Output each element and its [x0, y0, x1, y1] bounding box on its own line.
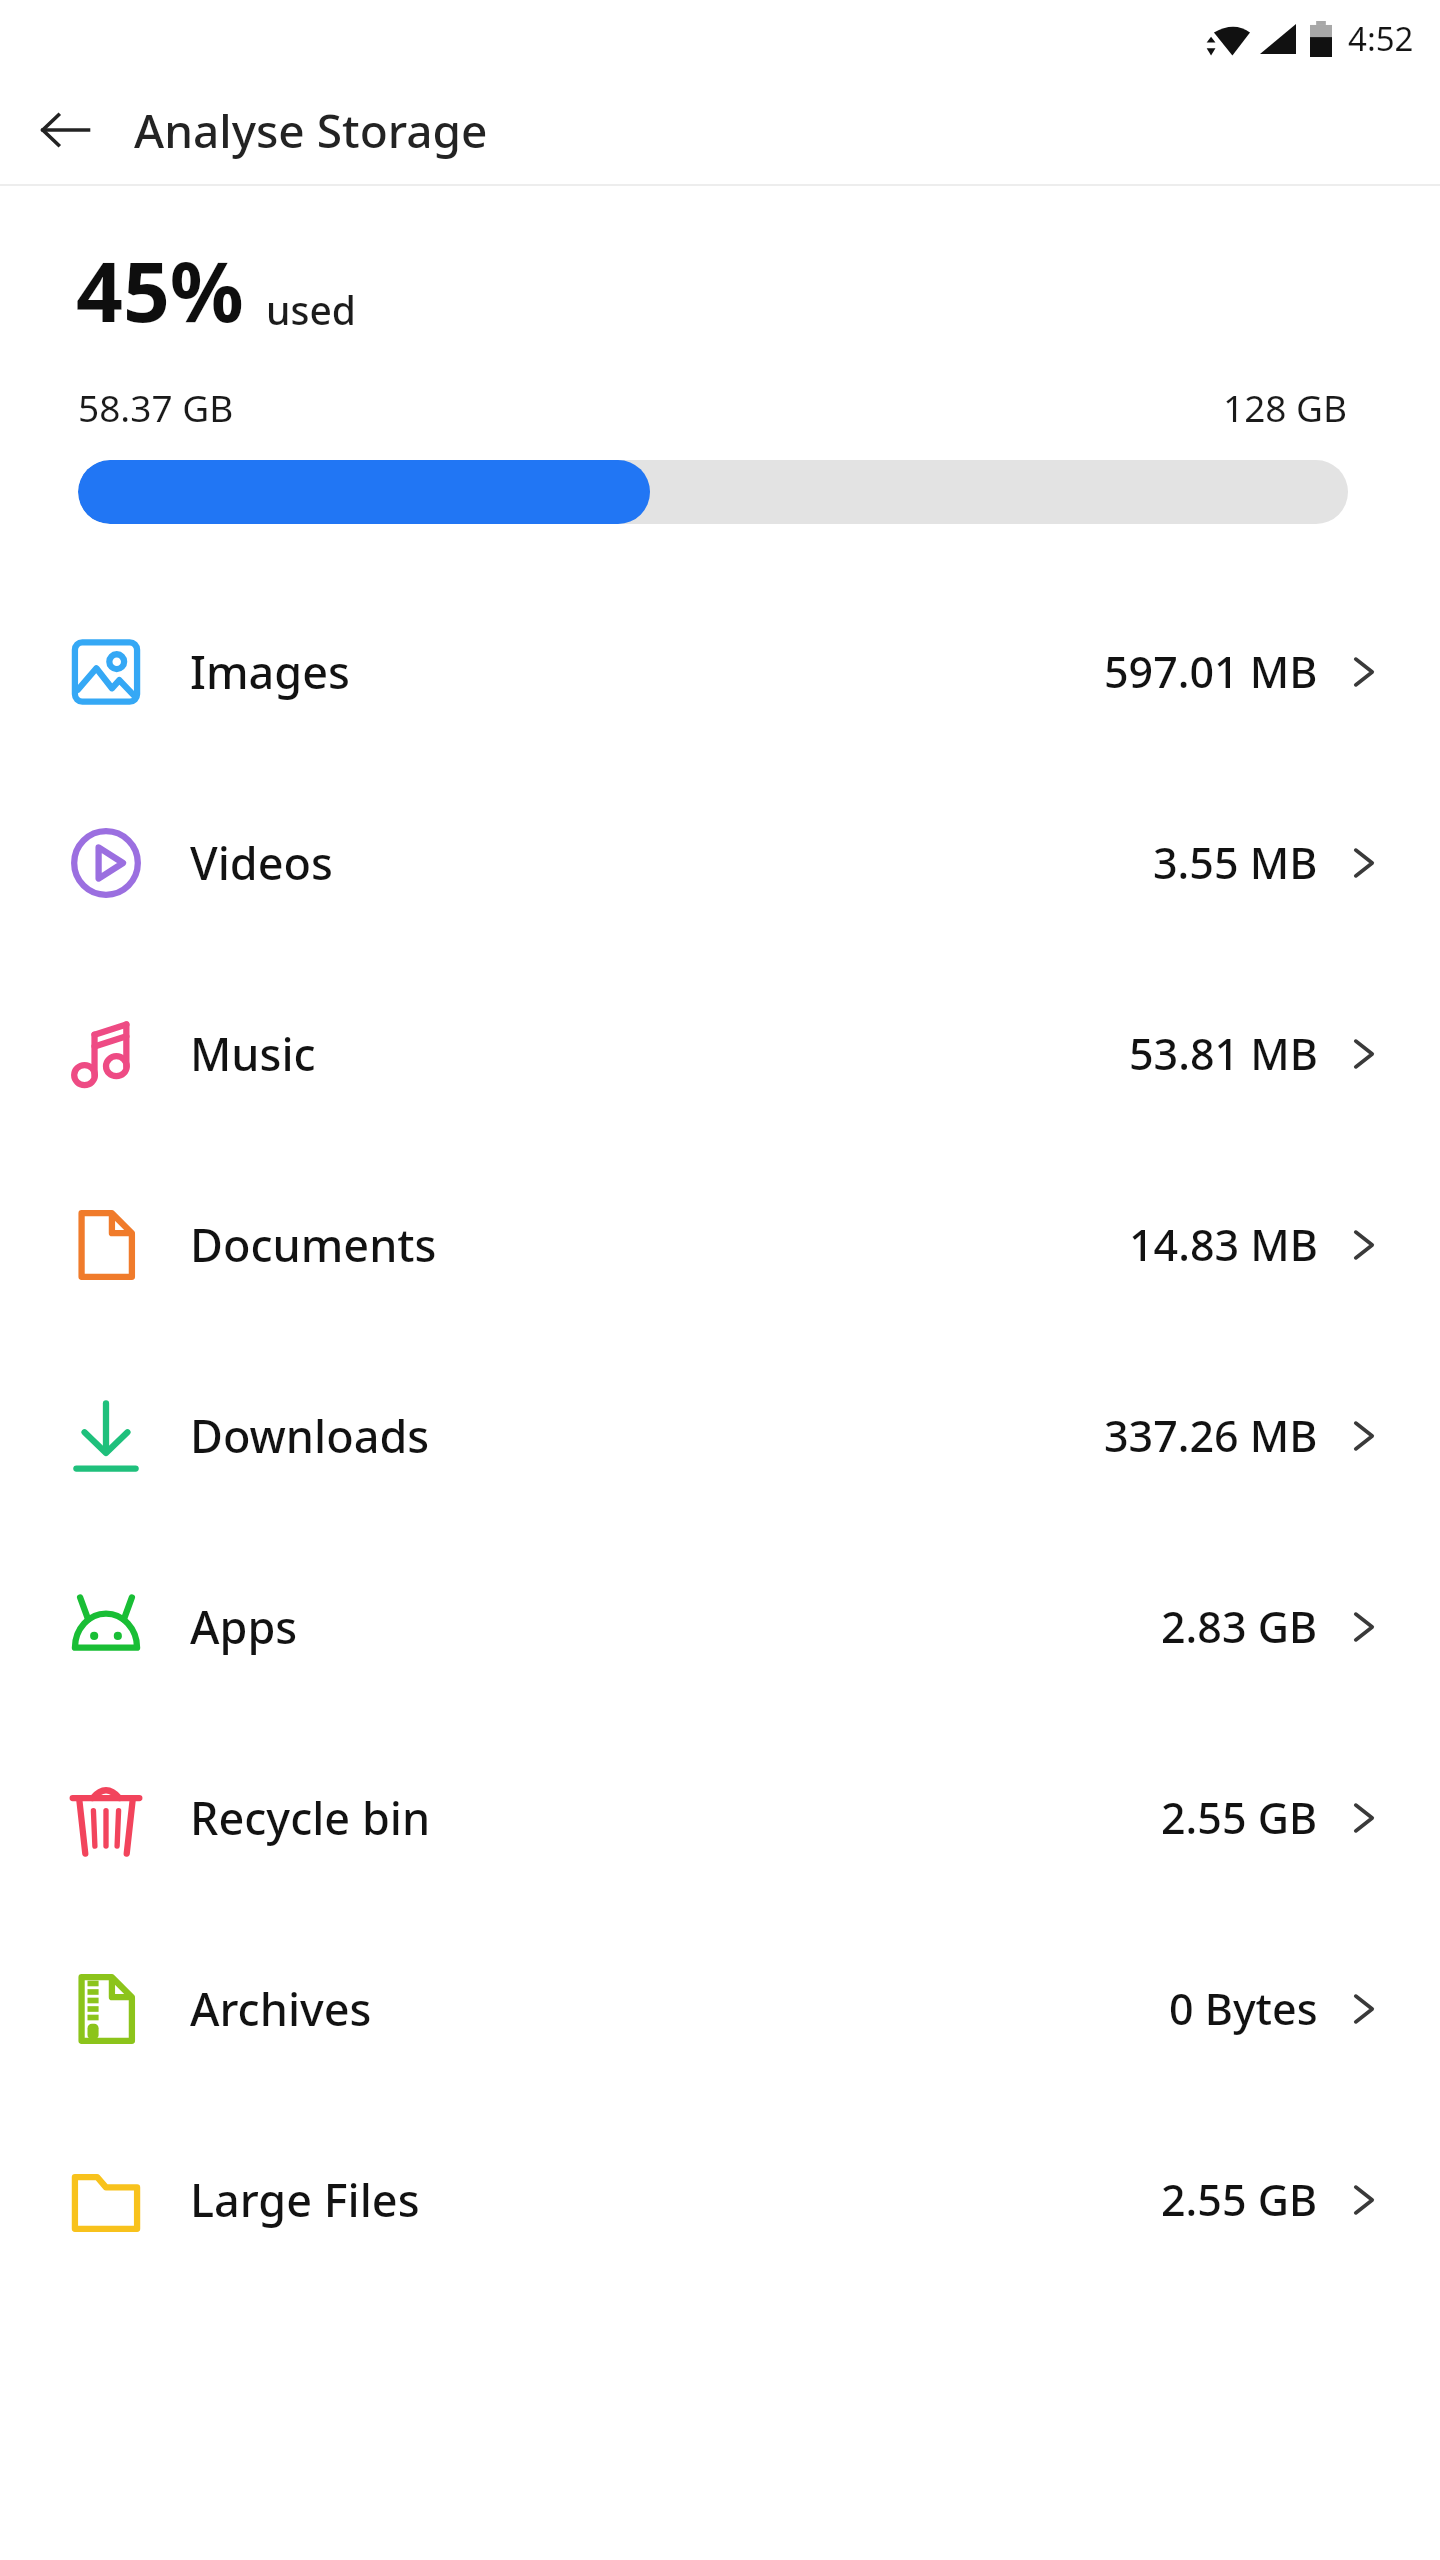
staticText: 3.55 MB: [1153, 833, 1318, 892]
staticText: used: [266, 283, 356, 336]
staticText: Documents: [190, 1214, 437, 1275]
staticText: 337.26 MB: [1104, 1406, 1318, 1465]
staticText: Music: [190, 1023, 316, 1084]
staticText: Archives: [190, 1978, 372, 2039]
staticText: 4:52: [1348, 16, 1414, 61]
staticText: 2.55 GB: [1161, 2170, 1318, 2229]
staticText: Images: [190, 641, 350, 702]
staticText: 0 Bytes: [1169, 1979, 1318, 2038]
staticText: Downloads: [190, 1405, 430, 1466]
staticText: 128 GB: [1223, 382, 1348, 432]
staticText: 14.83 MB: [1129, 1215, 1318, 1274]
staticText: 45%: [76, 234, 244, 346]
button[interactable]: Images: [0, 576, 1440, 767]
staticText: 2.83 GB: [1161, 1597, 1318, 1656]
staticText: 53.81 MB: [1129, 1024, 1318, 1083]
staticText: 597.01 MB: [1104, 642, 1318, 701]
staticText: 58.37 GB: [78, 382, 234, 432]
staticText: 2.55 GB: [1161, 1788, 1318, 1847]
button[interactable]: Large Files: [0, 2104, 1440, 2295]
staticText: Recycle bin: [190, 1787, 431, 1848]
button[interactable]: Back: [22, 87, 108, 173]
button[interactable]: Archives: [0, 1913, 1440, 2104]
button[interactable]: Videos: [0, 767, 1440, 958]
button[interactable]: Apps: [0, 1531, 1440, 1722]
staticText: Large Files: [190, 2169, 420, 2230]
button[interactable]: Recycle bin: [0, 1722, 1440, 1913]
button[interactable]: Documents: [0, 1149, 1440, 1340]
button[interactable]: Music: [0, 958, 1440, 1149]
staticText: Apps: [190, 1596, 298, 1657]
staticText: Videos: [190, 832, 333, 893]
button[interactable]: Downloads: [0, 1340, 1440, 1531]
staticText: Analyse Storage: [134, 99, 488, 162]
